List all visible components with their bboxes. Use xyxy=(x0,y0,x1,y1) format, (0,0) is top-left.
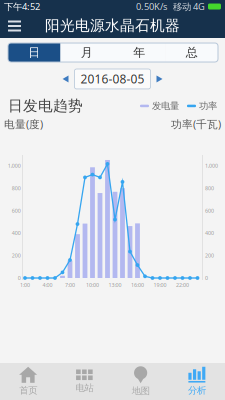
staticText: 功率(千瓦) xyxy=(171,117,221,131)
staticText: 13:00 xyxy=(108,281,121,289)
staticText: 总 xyxy=(186,45,198,60)
staticText: 22:00 xyxy=(176,281,189,289)
button[interactable]: Menu xyxy=(0,13,29,38)
staticText: 600 xyxy=(12,207,21,214)
button[interactable]: 分析 xyxy=(169,363,225,400)
button[interactable]: 首页 xyxy=(0,363,56,400)
staticText: 电站 xyxy=(75,382,93,394)
staticText: 1,000 xyxy=(205,162,218,169)
staticText: 电量(度) xyxy=(4,117,43,131)
staticText: 4:00 xyxy=(42,281,52,289)
button[interactable]: 电站 xyxy=(56,363,112,400)
staticText: 400 xyxy=(12,229,21,237)
staticText: 0 xyxy=(205,274,208,282)
staticText: 800 xyxy=(12,184,21,192)
staticText: 200 xyxy=(12,252,21,259)
button[interactable]: 总 xyxy=(165,43,218,62)
button[interactable]: Previous day xyxy=(62,75,68,82)
staticText: 分析 xyxy=(188,385,206,396)
staticText: 600 xyxy=(205,207,214,214)
staticText: 日 xyxy=(28,45,40,60)
staticText: 首页 xyxy=(19,385,37,396)
staticText: 地图 xyxy=(132,385,150,397)
staticText: 400 xyxy=(205,229,214,237)
staticText: 年 xyxy=(133,45,145,60)
staticText: 200 xyxy=(205,252,214,259)
staticText: 1:00 xyxy=(20,281,30,289)
staticText: 10:00 xyxy=(86,281,99,289)
staticText: 阳光电源水晶石机器 xyxy=(45,16,180,34)
staticText: 移动 4G xyxy=(167,0,205,13)
button[interactable]: 地图 xyxy=(112,363,169,400)
staticText: 0.50K/s xyxy=(136,0,167,13)
staticText: 功率 xyxy=(196,100,217,112)
button[interactable]: 年 xyxy=(113,43,165,62)
staticText: 19:00 xyxy=(153,281,166,289)
staticText: 发电量 xyxy=(149,100,179,112)
staticText: 下午4:52 xyxy=(4,0,40,13)
staticText: 1,000 xyxy=(8,162,21,169)
staticText: 800 xyxy=(205,184,214,192)
staticText: 月 xyxy=(81,45,93,60)
button[interactable]: 日 xyxy=(8,43,60,62)
button[interactable]: Next day xyxy=(156,75,162,82)
staticText: 0 xyxy=(18,274,21,282)
button[interactable]: 月 xyxy=(60,43,113,62)
staticText: 2016-08-05 xyxy=(80,71,144,87)
staticText: 16:00 xyxy=(131,281,144,289)
staticText: 7:00 xyxy=(65,281,75,289)
staticText: 日发电趋势 xyxy=(8,97,83,115)
